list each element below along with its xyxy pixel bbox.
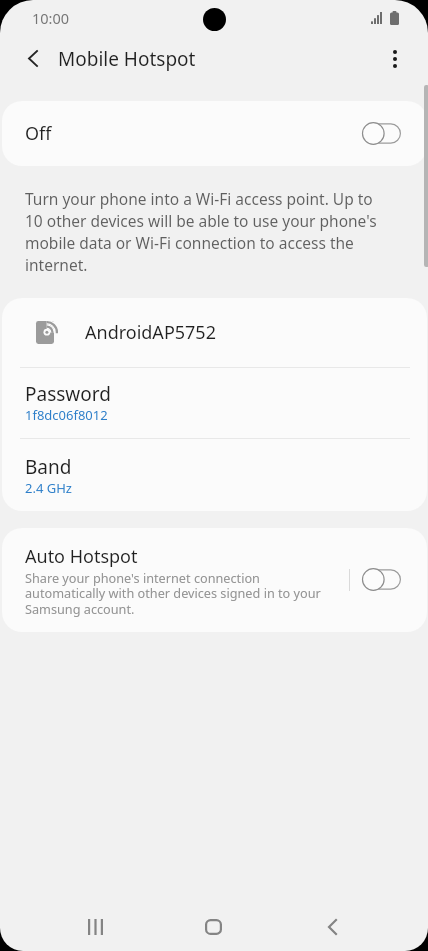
- button[interactable]: Band: [2, 439, 427, 511]
- button[interactable]: More options: [373, 37, 417, 81]
- staticText: Mobile Hotspot: [58, 46, 196, 72]
- button[interactable]: Off: [2, 101, 427, 166]
- staticText: Auto Hotspot: [25, 544, 138, 569]
- button[interactable]: Navigate up: [11, 37, 55, 81]
- staticText: AndroidAP5752: [85, 320, 216, 345]
- staticText: 2.4 GHz: [25, 479, 72, 497]
- staticText: 1f8dc06f8012: [25, 406, 108, 424]
- staticText: Turn your phone into a Wi-Fi access poin…: [25, 188, 387, 275]
- button[interactable]: Auto Hotspot: [2, 528, 427, 632]
- button[interactable]: Back: [273, 903, 392, 951]
- button[interactable]: Recent apps: [36, 903, 154, 951]
- button[interactable]: Password: [2, 368, 427, 438]
- staticText: Share your phone's internet connection a…: [25, 569, 325, 618]
- staticText: Password: [25, 381, 111, 407]
- staticText: 10:00: [32, 8, 70, 28]
- staticText: Off: [25, 121, 52, 146]
- button[interactable]: AndroidAP5752: [2, 298, 427, 367]
- button[interactable]: Home: [154, 903, 273, 951]
- staticText: Band: [25, 454, 72, 480]
